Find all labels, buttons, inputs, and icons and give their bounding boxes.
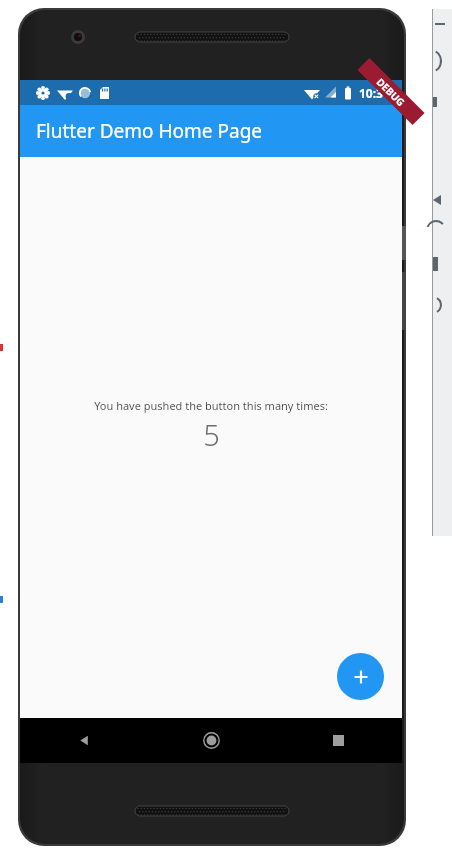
button[interactable]: Back [20, 718, 148, 763]
staticText: You have pushed the button this many tim… [94, 398, 328, 413]
button[interactable]: Home [148, 718, 275, 763]
staticText: 5 [203, 415, 220, 454]
staticText: Flutter Demo Home Page [36, 118, 263, 144]
button[interactable]: Recent apps [275, 718, 402, 763]
staticText: DEBUG [374, 75, 408, 109]
staticText: 10:31 [359, 85, 390, 101]
button[interactable]: Increment [337, 653, 384, 700]
